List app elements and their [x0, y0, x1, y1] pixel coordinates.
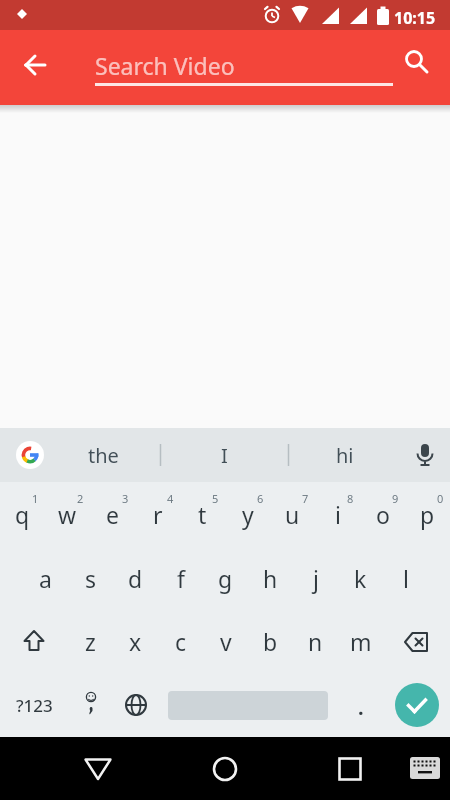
button[interactable]: t [180, 482, 225, 546]
staticText: 4 [167, 491, 174, 506]
staticText: 7 [302, 491, 309, 506]
staticText: 10:15 [394, 7, 436, 29]
staticText: k [354, 563, 367, 594]
button[interactable]: n [293, 610, 338, 673]
button[interactable]: hi [289, 428, 401, 482]
button[interactable]: a [23, 546, 68, 610]
staticText: r [153, 499, 163, 530]
staticText: 1 [32, 491, 39, 506]
staticText: 8 [347, 491, 354, 506]
button[interactable] [396, 41, 438, 83]
button[interactable] [158, 673, 338, 737]
staticText: c [175, 626, 187, 657]
staticText: the [88, 442, 119, 469]
button[interactable]: s [68, 546, 113, 610]
button[interactable]: u [270, 482, 315, 546]
button[interactable]: l [383, 546, 428, 610]
button[interactable]: j [293, 546, 338, 610]
staticText: s [85, 563, 97, 594]
staticText: Search Video [95, 50, 235, 81]
button[interactable] [14, 43, 58, 87]
button[interactable]: b [248, 610, 293, 673]
button[interactable]: p [405, 482, 450, 546]
button[interactable] [405, 751, 445, 785]
staticText: m [350, 626, 372, 657]
staticText: p [420, 499, 435, 530]
button[interactable]: f [158, 546, 203, 610]
button[interactable]: k [338, 546, 383, 610]
button[interactable]: m [338, 610, 383, 673]
staticText: b [263, 626, 278, 657]
button[interactable]: y [225, 482, 270, 546]
button[interactable]: i [315, 482, 360, 546]
button[interactable]: q [0, 482, 45, 546]
button[interactable]: w [45, 482, 90, 546]
staticText: 0 [437, 491, 444, 506]
button[interactable]: z [68, 610, 113, 673]
staticText: e [106, 499, 119, 530]
button[interactable]: ?123 [0, 673, 68, 737]
staticText: o [376, 499, 390, 530]
staticText: t [198, 499, 207, 530]
button[interactable]: h [248, 546, 293, 610]
staticText: 3 [122, 491, 129, 506]
button[interactable] [326, 745, 374, 793]
button[interactable] [68, 673, 113, 737]
staticText: I [221, 442, 228, 469]
button[interactable]: I [161, 428, 287, 482]
button[interactable]: the [48, 428, 158, 482]
staticText: a [39, 563, 52, 594]
staticText: ?123 [16, 694, 53, 717]
button[interactable]: g [203, 546, 248, 610]
button[interactable]: d [113, 546, 158, 610]
button[interactable]: v [203, 610, 248, 673]
staticText: y [242, 499, 254, 530]
button[interactable]: o [360, 482, 405, 546]
button[interactable]: r [135, 482, 180, 546]
button[interactable] [383, 610, 450, 673]
staticText: . [358, 694, 364, 721]
staticText: z [85, 626, 96, 657]
staticText: j [313, 563, 319, 594]
button[interactable]: x [113, 610, 158, 673]
staticText: u [285, 499, 300, 530]
staticText: q [15, 499, 30, 530]
staticText: 9 [392, 491, 399, 506]
button[interactable] [74, 745, 122, 793]
staticText: hi [336, 442, 354, 469]
button[interactable] [402, 432, 448, 478]
button[interactable]: . [338, 673, 383, 737]
staticText: g [218, 563, 233, 594]
staticText: f [177, 563, 185, 594]
button[interactable]: e [90, 482, 135, 546]
staticText: x [129, 626, 142, 657]
staticText: 6 [257, 491, 264, 506]
button[interactable] [201, 745, 249, 793]
button[interactable]: Search Video [95, 50, 393, 90]
button[interactable] [383, 673, 450, 737]
staticText: d [128, 563, 143, 594]
staticText: i [335, 499, 341, 530]
button[interactable] [0, 610, 68, 673]
button[interactable] [113, 673, 158, 737]
staticText: 2 [77, 491, 84, 506]
staticText: w [58, 499, 77, 530]
button[interactable]: c [158, 610, 203, 673]
staticText: n [308, 626, 323, 657]
staticText: l [403, 563, 409, 594]
staticText: 5 [212, 491, 219, 506]
button[interactable] [16, 441, 44, 469]
staticText: h [263, 563, 278, 594]
staticText: v [220, 626, 232, 657]
